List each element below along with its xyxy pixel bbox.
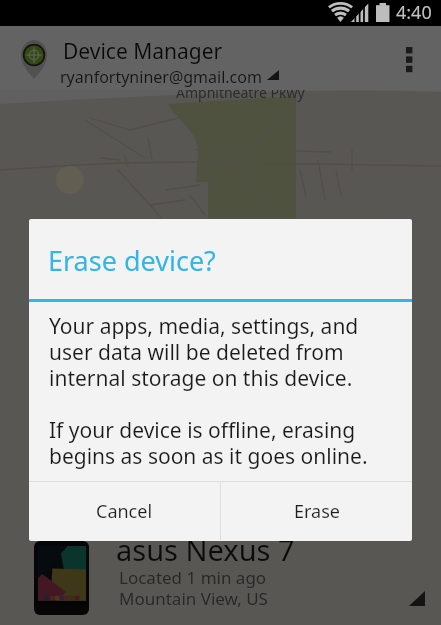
staticText: Device Manager xyxy=(63,37,223,66)
staticText: Mountain View, US xyxy=(119,587,268,610)
staticText: 4:40 xyxy=(396,0,432,25)
button[interactable]: asus Nexus 7 xyxy=(0,90,441,625)
staticText: Erase device? xyxy=(48,242,216,279)
staticText: Your apps, media, settings, and user dat… xyxy=(49,312,412,471)
staticText: asus Nexus 7 xyxy=(116,530,295,569)
button[interactable]: Device Manager xyxy=(0,26,441,90)
button[interactable]: More options xyxy=(386,26,432,90)
staticText: Amphitheatre Pkwy xyxy=(176,83,305,102)
button[interactable]: Erase xyxy=(221,482,412,540)
staticText: Located 1 min ago xyxy=(119,566,267,589)
staticText: Cancel xyxy=(96,499,153,524)
button[interactable]: Cancel xyxy=(29,482,220,540)
staticText: ryanfortyniner@gmail.com xyxy=(60,66,262,88)
staticText: Erase xyxy=(294,499,340,524)
